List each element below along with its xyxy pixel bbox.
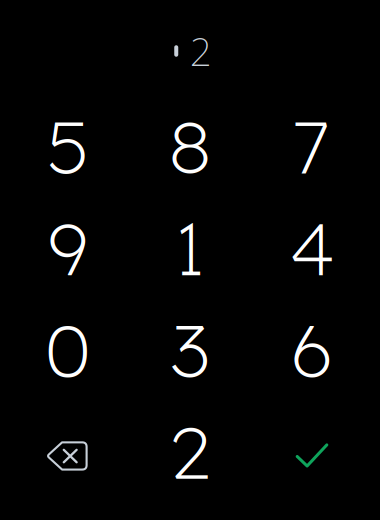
staticText: 5 — [47, 100, 89, 192]
button[interactable]: Confirm — [251, 401, 373, 503]
staticText: 3 — [170, 303, 209, 395]
button[interactable]: 1 — [129, 198, 251, 299]
button[interactable]: 7 — [251, 96, 373, 198]
staticText: 9 — [47, 201, 88, 294]
staticText: 1 — [174, 201, 205, 294]
button[interactable]: 9 — [7, 198, 129, 299]
button[interactable]: 3 — [129, 299, 251, 401]
staticText: 6 — [290, 303, 334, 395]
button[interactable]: 5 — [7, 96, 129, 198]
staticText: 2 — [169, 405, 210, 497]
button[interactable]: 6 — [251, 299, 373, 401]
button[interactable]: Delete — [7, 401, 129, 503]
staticText: 2 — [190, 25, 212, 77]
staticText: 0 — [45, 303, 91, 395]
staticText: 8 — [168, 100, 211, 192]
button[interactable]: 0 — [7, 299, 129, 401]
button[interactable]: 2 — [129, 401, 251, 503]
button[interactable]: 8 — [129, 96, 251, 198]
staticText: 4 — [289, 201, 335, 294]
staticText: 7 — [294, 100, 330, 192]
button[interactable]: 4 — [251, 198, 373, 299]
